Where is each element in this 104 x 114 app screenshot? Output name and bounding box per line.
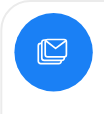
button[interactable]: Mail — [0, 0, 104, 114]
